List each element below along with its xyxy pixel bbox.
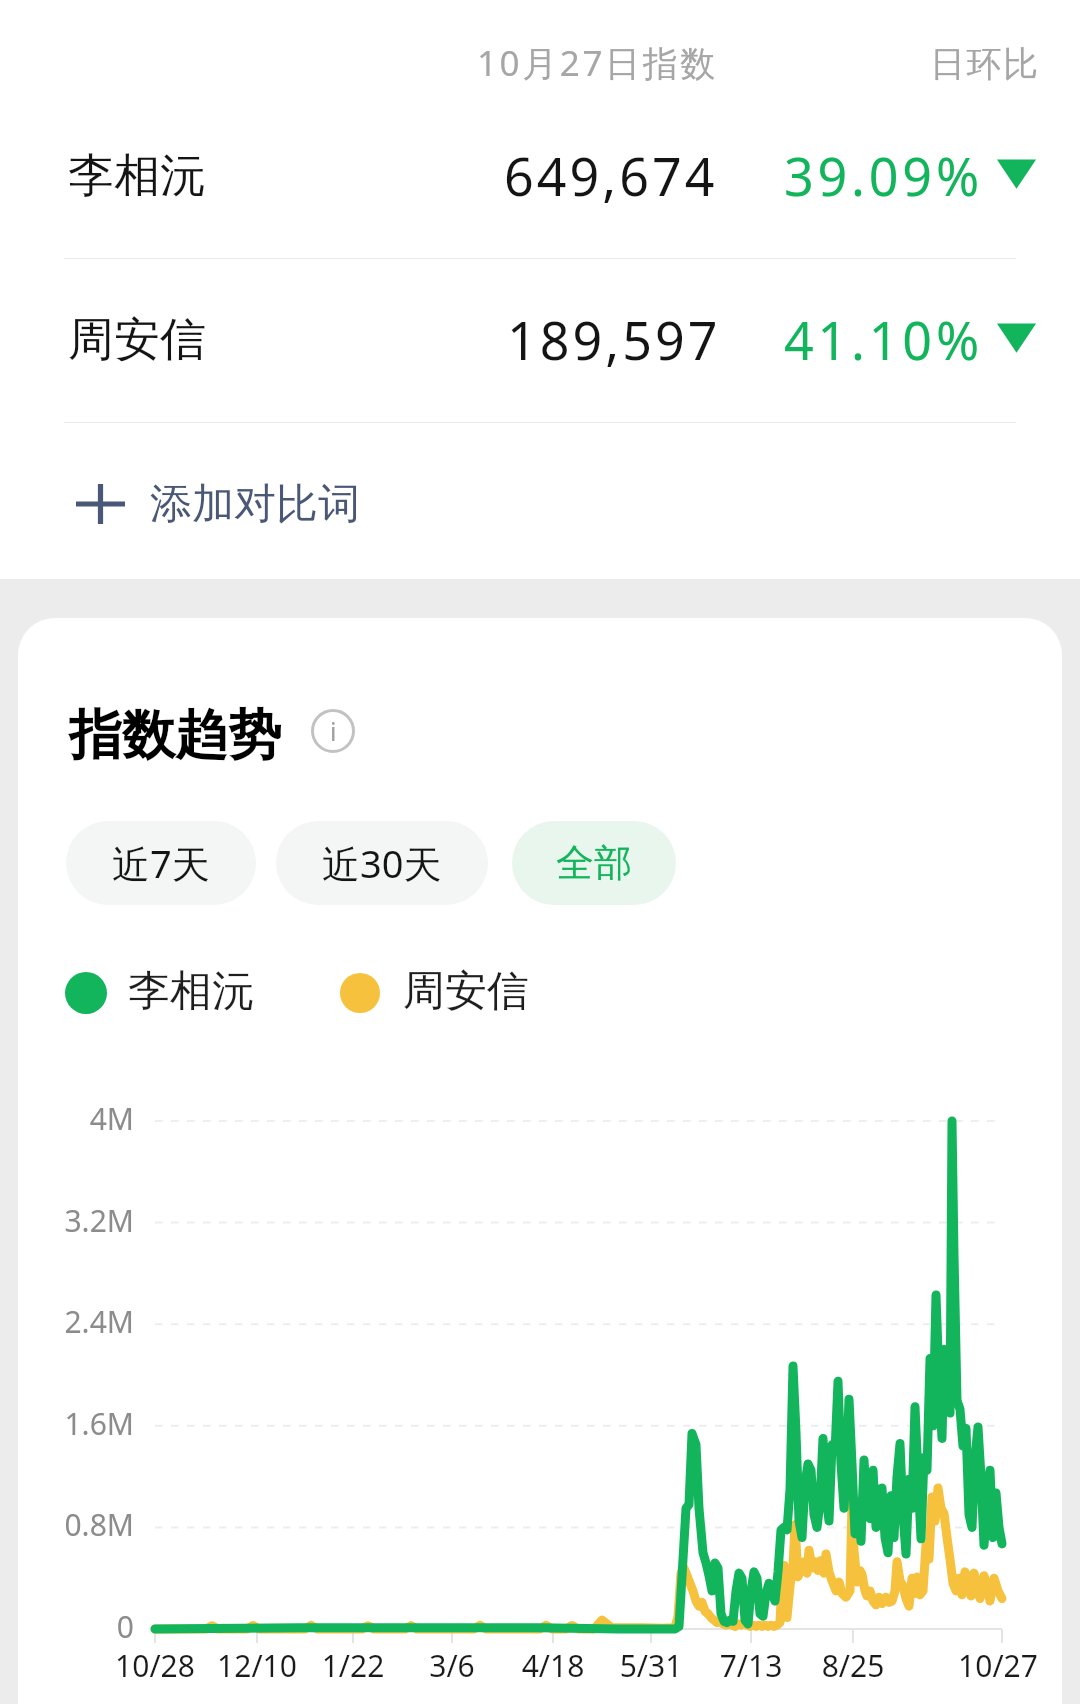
staticText: 4M — [18, 1098, 134, 1139]
other: Decrease — [1000, 325, 1033, 350]
staticText: i — [330, 714, 337, 748]
button[interactable]: 全部 — [512, 821, 676, 905]
button[interactable]: 近7天 — [66, 821, 256, 905]
button[interactable]: 李相沅 — [0, 118, 1080, 258]
staticText: 近7天 — [112, 837, 210, 889]
staticText: 7/13 — [681, 1645, 821, 1686]
staticText: 189,597 — [507, 304, 721, 375]
staticText: 10/27 — [928, 1645, 1062, 1686]
staticText: 8/25 — [783, 1645, 923, 1686]
staticText: 指数趋势 — [69, 702, 281, 769]
staticText: 日环比 — [930, 42, 1040, 86]
other: Decrease — [1000, 161, 1033, 186]
staticText: 10/28 — [85, 1645, 225, 1686]
staticText: 周安信 — [68, 311, 206, 369]
button[interactable]: 添加对比词 — [0, 438, 1080, 570]
staticText: 1.6M — [18, 1403, 134, 1444]
staticText: 41.10% — [784, 304, 983, 375]
staticText: 649,674 — [504, 140, 718, 211]
staticText: 2.4M — [18, 1301, 134, 1342]
staticText: 添加对比词 — [150, 478, 360, 531]
staticText: 10月27日指数 — [477, 39, 718, 87]
staticText: 5/31 — [581, 1645, 721, 1686]
staticText: 39.09% — [784, 140, 983, 211]
staticText: 3/6 — [382, 1645, 522, 1686]
staticText: 1/22 — [283, 1645, 423, 1686]
staticText: 0 — [18, 1606, 134, 1647]
staticText: 0.8M — [18, 1504, 134, 1545]
button[interactable]: 近30天 — [276, 821, 488, 905]
button[interactable]: Info — [311, 709, 355, 753]
staticText: 李相沅 — [68, 147, 206, 205]
staticText: 全部 — [556, 839, 632, 887]
staticText: 近30天 — [322, 837, 442, 889]
staticText: 3.2M — [18, 1200, 134, 1241]
staticText: 12/10 — [187, 1645, 327, 1686]
staticText: 4/18 — [483, 1645, 623, 1686]
staticText: 李相沅 — [128, 965, 254, 1018]
staticText: 周安信 — [403, 965, 529, 1018]
button[interactable]: 周安信 — [0, 282, 1080, 422]
